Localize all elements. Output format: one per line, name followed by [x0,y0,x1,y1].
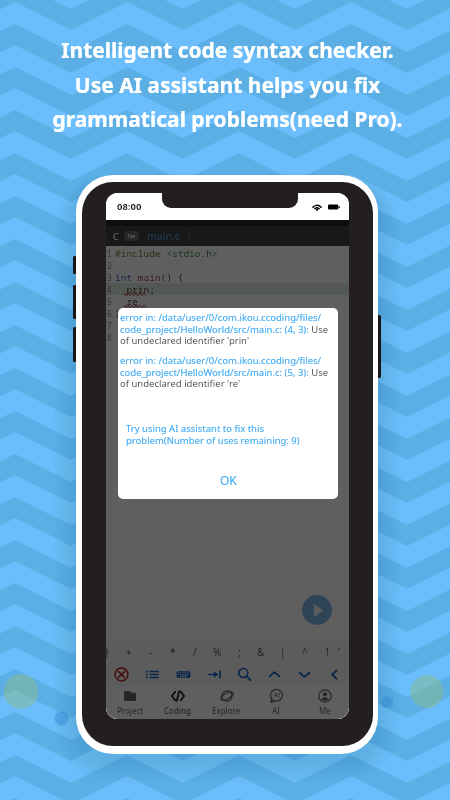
staticText: Coding [164,705,192,716]
staticText: 6 [107,308,112,319]
staticText: / [193,645,197,659]
button[interactable]: Indent [199,662,229,686]
staticText: & [257,645,265,659]
button[interactable]: ' [338,641,339,662]
staticText: int main() { [115,271,184,283]
staticText: Intelligent code syntax checker. Use AI … [52,36,403,133]
staticText: Ter [127,232,136,240]
button[interactable]: ; [228,641,250,662]
staticText: Me [319,705,331,716]
button[interactable]: Keyboard [168,662,199,686]
staticText: % [213,645,222,659]
staticText: 5 [107,296,112,307]
staticText: AI [272,705,280,716]
staticText: Try using AI assistant to fix this probl… [126,422,308,447]
staticText: 08:00 [117,200,142,213]
staticText: prin; [115,283,155,295]
button[interactable]: / [184,641,206,662]
button[interactable]: AI [251,686,300,719]
button[interactable]: Search [229,662,259,686]
button[interactable]: Explore [202,686,251,719]
button[interactable]: - [140,641,162,662]
button[interactable]: Run [302,595,332,625]
staticText: - [149,645,153,659]
staticText: } [106,645,109,659]
button[interactable]: OK [200,469,257,491]
staticText: + [126,645,132,659]
staticText: error in: /data/user/0/com.ikou.ccoding/… [120,311,336,347]
button[interactable]: List [137,662,168,686]
staticText: main.c [147,229,180,243]
staticText: 1 [107,248,112,259]
staticText: Explore [212,705,241,716]
staticText: ' [338,645,339,659]
staticText: ; [238,645,241,659]
button[interactable]: Me [300,686,349,719]
staticText: ! [326,645,329,659]
button[interactable]: & [250,641,272,662]
staticText: 2 [107,260,112,271]
button[interactable]: ! [316,641,338,662]
button[interactable]: Stop [106,662,137,686]
button[interactable]: Previous [259,662,289,686]
staticText: re [115,295,138,307]
button[interactable]: | [272,641,294,662]
button[interactable]: Next [289,662,319,686]
staticText: error in: /data/user/0/com.ikou.ccoding/… [120,354,336,390]
button[interactable]: Project [106,686,154,719]
staticText: 4 [107,284,112,295]
button[interactable]: % [206,641,228,662]
staticText: #include <stdio.h> [115,247,218,259]
button[interactable]: Back [319,662,349,686]
staticText: 3 [107,272,112,283]
staticText: ^ [302,645,308,659]
staticText: * [170,645,176,659]
staticText: 8 [107,332,112,343]
staticText: 7 [107,320,112,331]
staticText: | [280,645,286,659]
button[interactable]: Coding [154,686,202,719]
staticText: AI [274,691,281,699]
button[interactable]: + [118,641,140,662]
staticText: Project [117,705,144,716]
button[interactable]: * [162,641,184,662]
button[interactable]: ^ [294,641,316,662]
staticText: OK [220,472,237,488]
staticText: C [113,230,119,242]
staticText: } [115,307,121,319]
